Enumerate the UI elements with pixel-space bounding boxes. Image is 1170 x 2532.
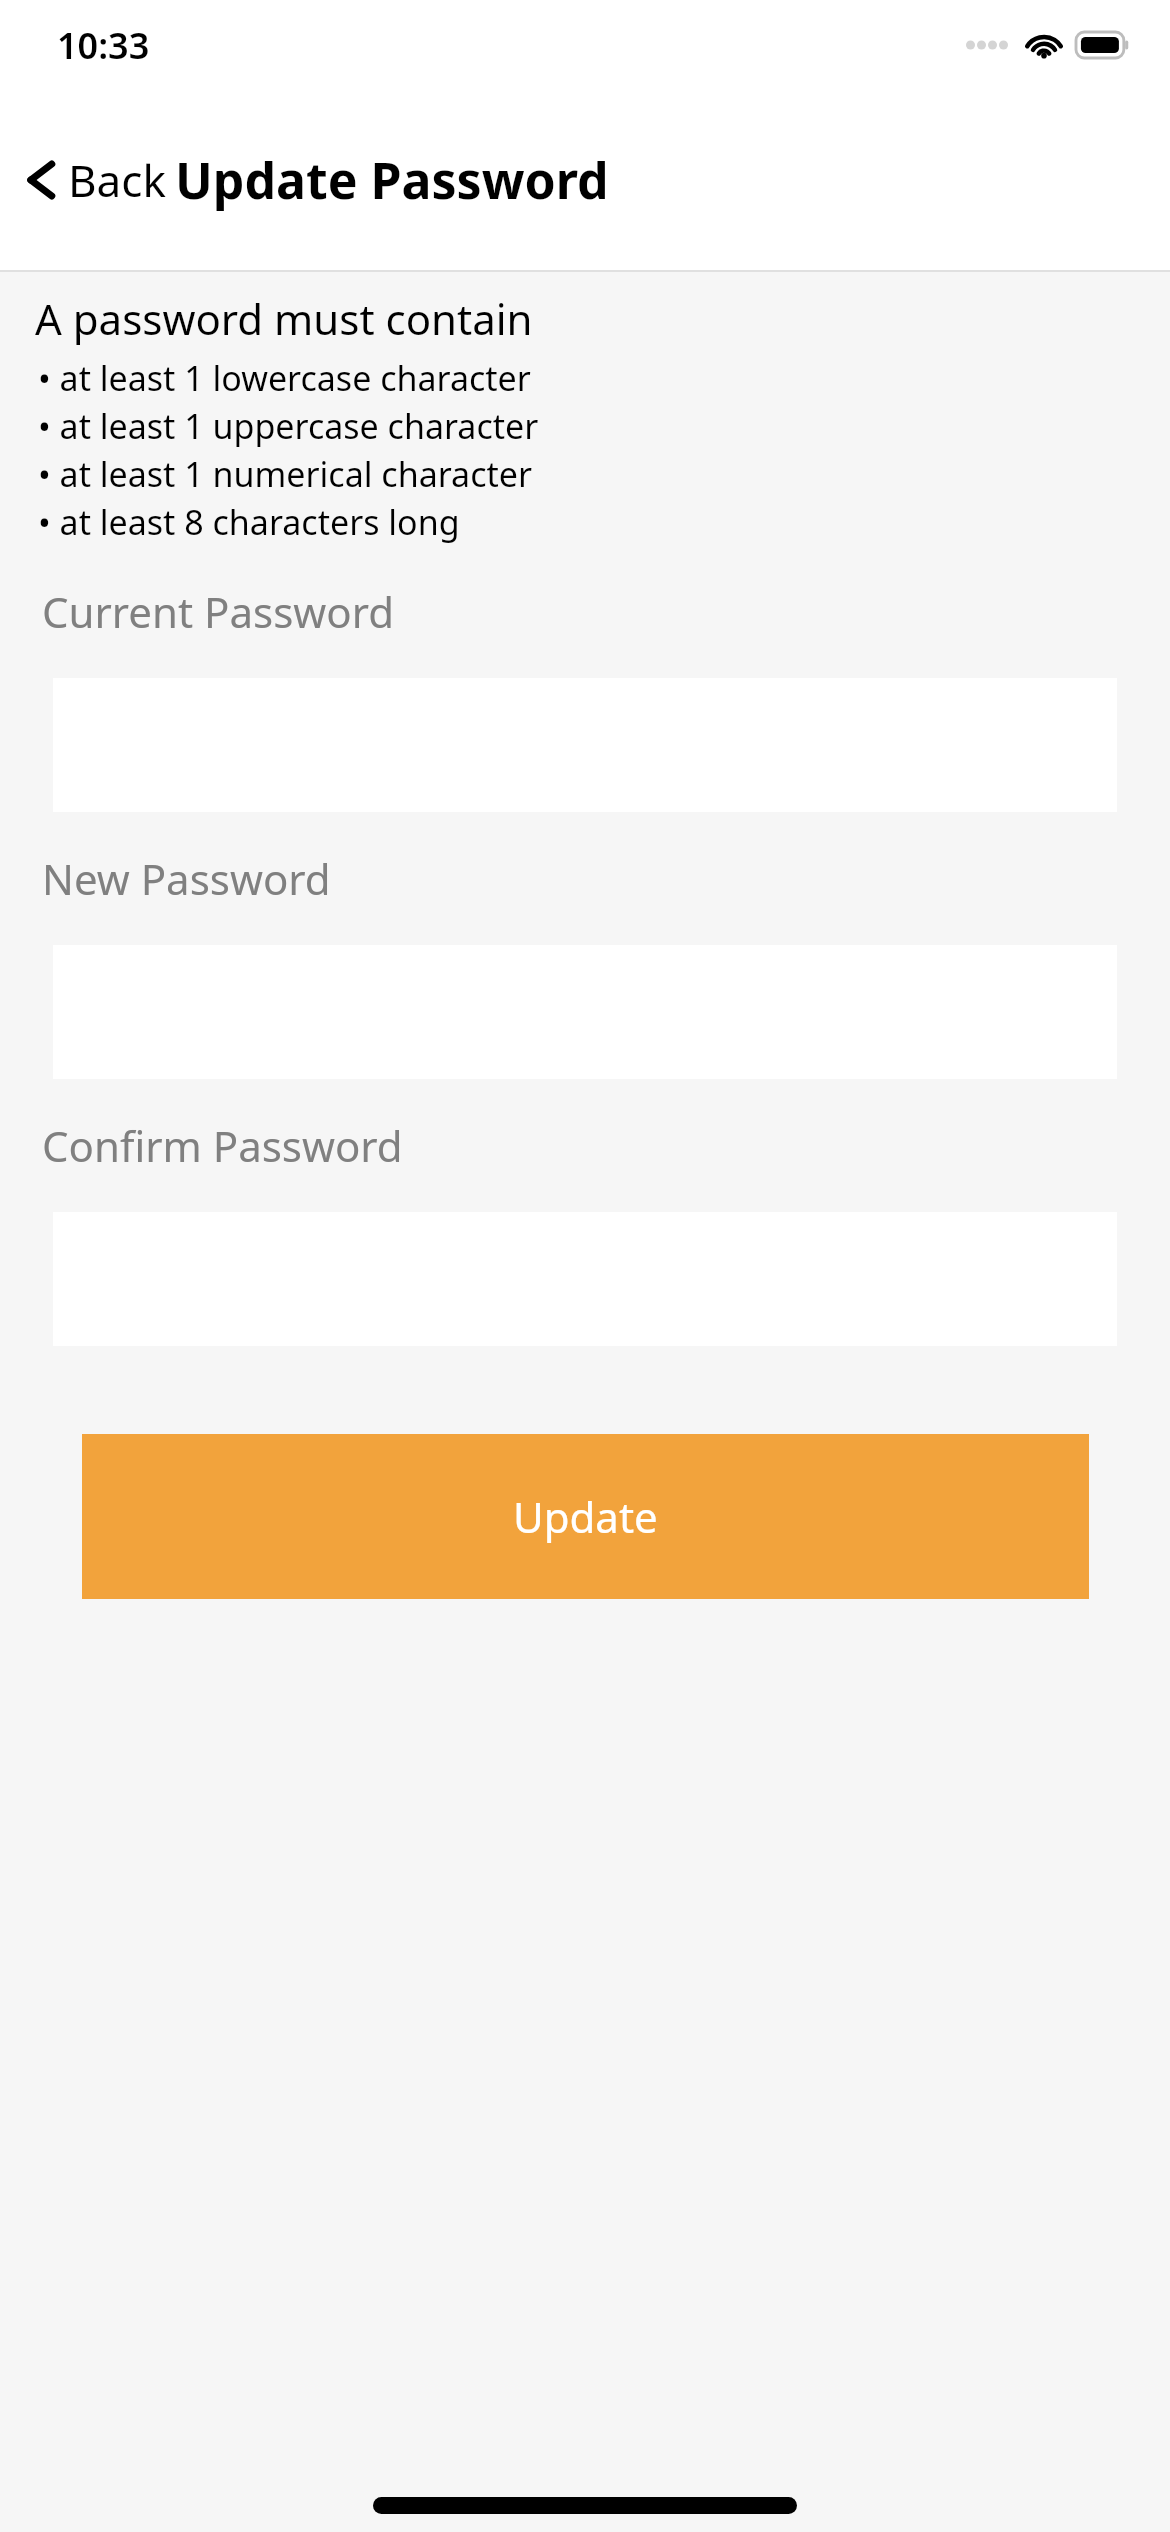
staticText: Back [68, 150, 166, 210]
staticText: • at least 1 numerical character [38, 451, 532, 497]
staticText: Update [513, 1488, 658, 1545]
staticText: • at least 8 characters long [38, 499, 460, 545]
staticText: • at least 1 uppercase character [38, 403, 539, 449]
staticText: Current Password [42, 583, 395, 640]
staticText: A password must contain [35, 290, 533, 347]
button[interactable]: Back [18, 138, 174, 222]
staticText: • at least 1 lowercase character [38, 355, 531, 401]
staticText: Update Password [175, 146, 609, 214]
button[interactable]: Update [82, 1434, 1089, 1599]
staticText: New Password [42, 850, 331, 907]
staticText: 10:33 [57, 21, 150, 70]
staticText: Confirm Password [42, 1117, 403, 1174]
